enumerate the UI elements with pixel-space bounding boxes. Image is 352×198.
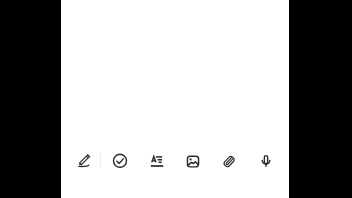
button[interactable]: Insert image	[178, 146, 208, 176]
button[interactable]: Voice input	[251, 146, 281, 176]
button[interactable]: Handwriting input	[69, 146, 99, 176]
button[interactable]: Done	[105, 146, 135, 176]
button[interactable]: Attach file	[214, 146, 244, 176]
button[interactable]: Text formatting	[142, 146, 172, 176]
